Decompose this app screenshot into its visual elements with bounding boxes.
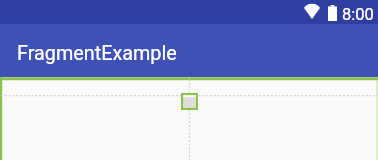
button[interactable]: FragmentExample [0, 24, 378, 77]
other: Battery full [328, 5, 337, 21]
button[interactable]: TextView widget [181, 93, 198, 110]
other: Wi-Fi signal [304, 4, 320, 19]
staticText: FragmentExample [17, 42, 177, 65]
staticText: 8:00 [342, 5, 374, 24]
